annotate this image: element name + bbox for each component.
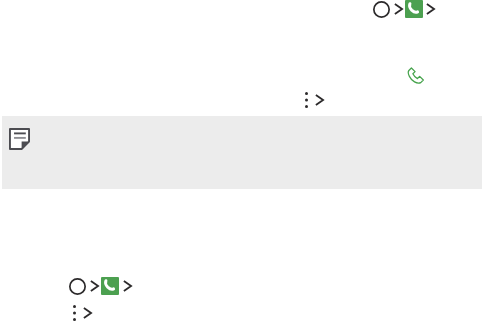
button[interactable]: Open Phone app [69, 277, 132, 295]
button[interactable]: Open Phone app [373, 0, 435, 18]
other: Phone call [405, 65, 427, 87]
button[interactable]: More options [305, 92, 324, 108]
button[interactable]: More options [73, 305, 92, 321]
